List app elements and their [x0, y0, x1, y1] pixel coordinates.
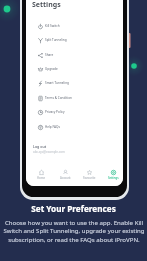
staticText: Terms & Condition: [45, 96, 72, 100]
staticText: Account: [60, 176, 71, 180]
button[interactable]: Home: [31, 167, 51, 180]
button[interactable]: Account: [55, 167, 75, 180]
staticText: Home: [37, 176, 45, 180]
button[interactable]: Favourite: [79, 167, 99, 180]
staticText: Upgrade: [45, 67, 58, 71]
staticText: Settings: [32, 0, 61, 10]
staticText: Help FAQs: [45, 125, 60, 129]
button[interactable]: Share: [26, 48, 123, 62]
button[interactable]: Upgrade: [26, 62, 123, 76]
staticText: Split Tunneling: [45, 38, 67, 42]
button[interactable]: Help FAQs: [26, 120, 123, 134]
button[interactable]: Kill Switch: [26, 19, 123, 33]
staticText: Share: [45, 53, 54, 57]
staticText: Log out: [33, 144, 47, 149]
button[interactable]: Terms & Condition: [26, 91, 123, 105]
staticText: Kill Switch: [45, 24, 60, 28]
staticText: Smart Tunneling: [45, 81, 69, 85]
staticText: Choose how you want to use the app. Enab…: [3, 218, 145, 244]
button[interactable]: Split Tunneling: [26, 33, 123, 47]
button[interactable]: Privacy Policy: [26, 105, 123, 119]
button[interactable]: Smart Tunneling: [26, 76, 123, 90]
button[interactable]: Log out: [33, 144, 65, 154]
staticText: Privacy Policy: [45, 110, 65, 114]
staticText: Settings: [108, 176, 119, 180]
button[interactable]: Settings: [103, 167, 123, 180]
staticText: Favourite: [83, 176, 96, 180]
staticText: abc.xyz@example.com: [33, 150, 65, 154]
staticText: Set Your Preferences: [31, 203, 116, 214]
